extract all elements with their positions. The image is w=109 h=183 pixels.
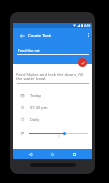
staticText: Create Task xyxy=(28,33,52,39)
button[interactable]: Navigate up xyxy=(18,31,27,40)
staticText: 07:30 pm xyxy=(30,105,48,110)
button[interactable]: 07:30 pm xyxy=(13,101,92,113)
staticText: Daily xyxy=(30,117,40,122)
staticText: Feed the cat xyxy=(18,48,40,53)
staticText: Today xyxy=(30,93,42,98)
staticText: 1 xyxy=(58,135,60,139)
button[interactable]: More options xyxy=(85,31,92,38)
staticText: Feed Skylar and lock the doors, fill the… xyxy=(16,72,90,82)
button[interactable]: Home xyxy=(48,150,57,159)
staticText: 4:16 xyxy=(84,24,91,28)
button[interactable]: Recent apps xyxy=(70,150,79,159)
button[interactable]: Today xyxy=(13,89,92,101)
button[interactable]: Back xyxy=(26,150,35,159)
button[interactable]: Daily xyxy=(13,113,92,125)
button[interactable]: Save task xyxy=(78,58,87,67)
